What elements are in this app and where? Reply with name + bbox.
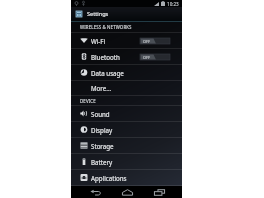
button[interactable]: Wi-Fi xyxy=(71,33,182,48)
button[interactable]: Battery xyxy=(71,154,182,169)
staticText: Applications xyxy=(91,174,127,182)
button[interactable]: Recent apps xyxy=(153,186,165,198)
staticText: More... xyxy=(91,84,112,92)
button[interactable]: Home xyxy=(121,186,133,198)
staticText: DEVICE xyxy=(80,98,96,104)
button[interactable]: Data usage xyxy=(71,65,182,80)
staticText: Display xyxy=(91,126,113,134)
staticText: OFF xyxy=(143,55,150,60)
button[interactable]: Sound xyxy=(71,106,182,121)
staticText: Bluetooth xyxy=(91,53,120,61)
staticText: 10:23 xyxy=(167,1,179,7)
button[interactable]: OFF xyxy=(140,54,170,60)
button[interactable]: Display xyxy=(71,122,182,137)
staticText: Sound xyxy=(91,110,110,118)
staticText: OFF xyxy=(143,39,150,44)
button[interactable]: Storage xyxy=(71,138,182,153)
staticText: Storage xyxy=(91,142,114,150)
button[interactable]: Applications xyxy=(71,170,182,185)
button[interactable]: More... xyxy=(71,81,182,95)
staticText: Wi-Fi xyxy=(91,37,106,45)
staticText: WIRELESS & NETWORKS xyxy=(80,24,132,30)
staticText: Battery xyxy=(91,158,113,166)
staticText: Settings xyxy=(87,10,109,18)
button[interactable]: OFF xyxy=(140,38,170,44)
staticText: Data usage xyxy=(91,69,124,77)
button[interactable]: Settings xyxy=(71,7,182,21)
button[interactable]: Bluetooth xyxy=(71,49,182,64)
button[interactable]: Back xyxy=(89,186,101,198)
